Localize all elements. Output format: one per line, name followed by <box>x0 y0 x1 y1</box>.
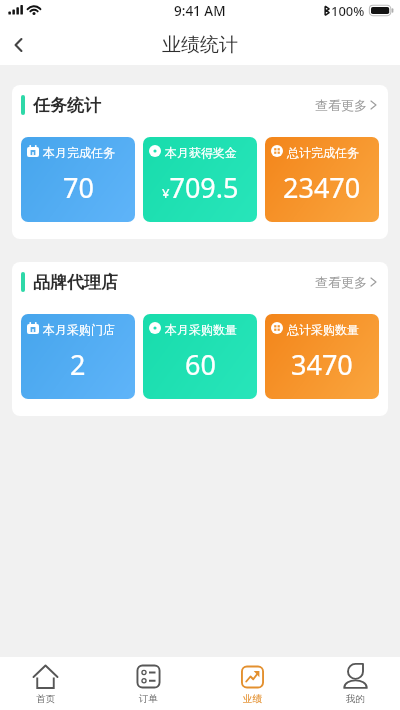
staticText: 本月完成任务 <box>43 145 115 160</box>
staticText: 100% <box>331 2 365 20</box>
staticText: 订单 <box>139 693 158 705</box>
staticText: 70 <box>63 169 94 206</box>
staticText: ¥709.5 <box>162 169 239 206</box>
button[interactable]: 本月获得奖金 <box>143 137 257 222</box>
staticText: 任务统计 <box>33 95 101 116</box>
staticText: 2 <box>70 346 86 383</box>
staticText: 本月采购门店 <box>43 322 115 337</box>
staticText: 9:41 AM <box>174 2 226 20</box>
button[interactable]: 首页 <box>8 657 82 710</box>
staticText: 本月获得奖金 <box>165 145 237 160</box>
button[interactable]: 查看更多 <box>303 264 388 300</box>
button[interactable]: 总计采购数量 <box>265 314 379 399</box>
staticText: 本月采购数量 <box>165 322 237 337</box>
button[interactable]: 本月采购门店 <box>21 314 135 399</box>
staticText: 品牌代理店 <box>33 272 118 293</box>
staticText: 查看更多 <box>315 97 367 113</box>
staticText: 我的 <box>346 693 365 705</box>
staticText: 查看更多 <box>315 274 367 290</box>
staticText: 总计完成任务 <box>287 145 359 160</box>
button[interactable]: 业绩 <box>215 657 289 710</box>
button[interactable]: 我的 <box>318 657 392 710</box>
staticText: 23470 <box>283 169 361 206</box>
staticText: 3470 <box>291 346 353 383</box>
staticText: 业绩 <box>243 693 262 705</box>
staticText: 60 <box>185 346 216 383</box>
button[interactable]: 本月采购数量 <box>143 314 257 399</box>
staticText: 首页 <box>36 693 55 705</box>
button[interactable]: 查看更多 <box>303 87 388 123</box>
staticText: 业绩统计 <box>162 33 238 57</box>
staticText: 总计采购数量 <box>287 322 359 337</box>
button[interactable]: 总计完成任务 <box>265 137 379 222</box>
button[interactable]: Back <box>0 25 36 65</box>
button[interactable]: 本月完成任务 <box>21 137 135 222</box>
button[interactable]: 订单 <box>111 657 185 710</box>
